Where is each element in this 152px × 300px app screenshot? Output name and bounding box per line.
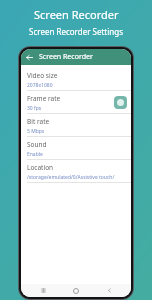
staticText: Location xyxy=(27,163,54,172)
button[interactable]: Sound xyxy=(21,137,131,160)
staticText: Screen Recorder Settings xyxy=(29,26,123,37)
button[interactable]: Video size xyxy=(21,68,131,91)
staticText: Screen Recorder xyxy=(34,7,119,22)
staticText: 5 Mbps xyxy=(27,128,45,135)
staticText: Bit rate xyxy=(27,117,50,126)
button[interactable]: Toggle frame rate xyxy=(114,96,127,109)
staticText: Sound xyxy=(27,140,47,149)
button[interactable]: Navigate up xyxy=(21,49,37,65)
staticText: Enable xyxy=(27,151,43,158)
staticText: Screen Recorder xyxy=(39,52,93,62)
button[interactable]: Bit rate xyxy=(21,114,131,137)
button[interactable]: Home xyxy=(65,284,87,297)
staticText: /storage/emulated/0/Assistive touch/ xyxy=(27,174,115,181)
button[interactable]: Back xyxy=(98,284,120,297)
staticText: 30 fps xyxy=(27,105,42,112)
button[interactable]: Location xyxy=(21,160,131,183)
staticText: Video size xyxy=(27,71,58,80)
button[interactable]: Recents xyxy=(32,284,54,297)
staticText: Frame rate xyxy=(27,94,61,103)
staticText: 2078x1080 xyxy=(27,82,53,89)
button[interactable]: Frame rate xyxy=(21,91,131,114)
